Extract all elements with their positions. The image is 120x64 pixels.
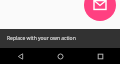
staticText: Replace with your own action: [7, 35, 76, 42]
button[interactable]: Back: [0, 48, 40, 64]
button[interactable]: Send email: [84, 0, 116, 21]
button[interactable]: Recent apps: [80, 48, 120, 64]
button[interactable]: Home: [40, 48, 80, 64]
button[interactable]: Replace with your own action: [0, 29, 120, 48]
